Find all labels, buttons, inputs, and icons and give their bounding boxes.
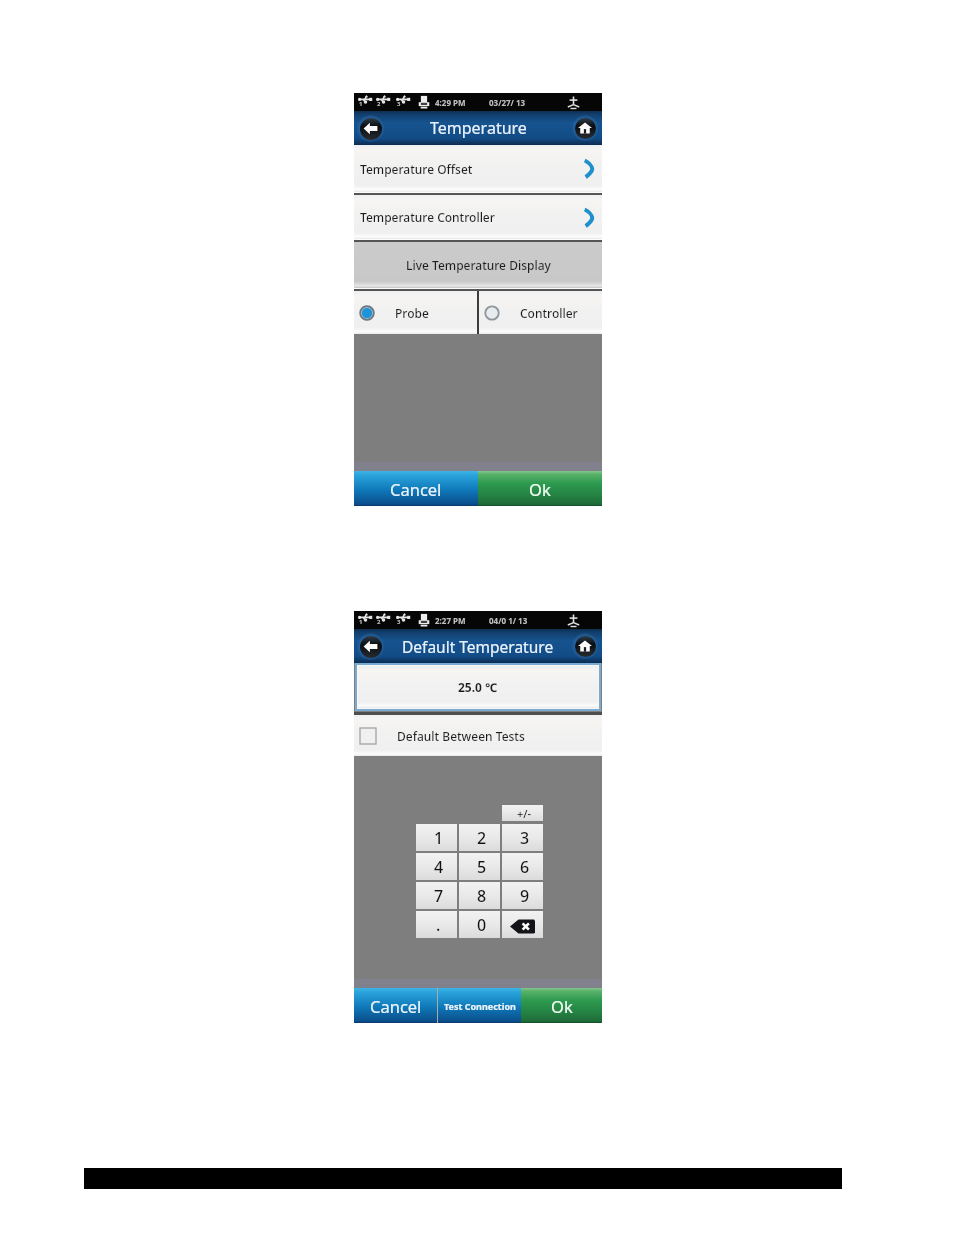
staticText: 2	[377, 100, 381, 108]
staticText: 3	[397, 618, 401, 626]
button[interactable]: Temperature Offset	[354, 145, 602, 192]
staticText: 04/0 1/ 13	[489, 615, 528, 626]
staticText: +/-	[517, 806, 532, 821]
staticText: 4:29 PM	[435, 97, 466, 108]
staticText: 0	[477, 914, 487, 936]
staticText: 2:27 PM	[435, 615, 466, 626]
button[interactable]: 7	[416, 882, 457, 909]
staticText: Ok	[551, 995, 573, 1017]
button[interactable]: Cancel	[354, 471, 478, 506]
button[interactable]: Back	[357, 633, 384, 660]
staticText: .	[436, 914, 441, 936]
staticText: Temperature Controller	[360, 209, 495, 225]
staticText: 3	[397, 100, 401, 108]
button[interactable]: Ok	[478, 471, 602, 506]
button[interactable]: Back	[357, 115, 384, 142]
staticText: 3	[520, 827, 530, 849]
button[interactable]: Backspace	[502, 911, 543, 938]
staticText: 6	[520, 856, 530, 878]
staticText: Cancel	[370, 995, 422, 1017]
button[interactable]: 8	[459, 882, 500, 909]
button[interactable]: 9	[502, 882, 543, 909]
staticText: 1	[359, 618, 363, 626]
button[interactable]: Home	[572, 115, 598, 141]
button[interactable]: 0	[459, 911, 500, 938]
staticText: 8	[477, 885, 487, 907]
staticText: 25.0 ℃	[458, 679, 498, 695]
staticText: Cancel	[390, 478, 442, 500]
button[interactable]: Home	[572, 633, 598, 659]
staticText: Probe	[395, 305, 429, 321]
staticText: 2	[477, 827, 487, 849]
button[interactable]: 25.0 ℃	[358, 666, 598, 708]
staticText: 7	[434, 885, 444, 907]
staticText: 1	[359, 100, 363, 108]
staticText: 1	[434, 827, 444, 849]
button[interactable]: Cancel	[354, 988, 437, 1023]
button[interactable]: 3	[502, 824, 543, 851]
button[interactable]: Default Between Tests	[354, 715, 602, 756]
staticText: 2	[377, 618, 381, 626]
button[interactable]: Test Connection	[438, 988, 521, 1023]
button[interactable]: Ok	[521, 988, 602, 1023]
button[interactable]: Temperature Controller	[354, 195, 602, 239]
button[interactable]: .	[416, 911, 457, 938]
staticText: 5	[477, 856, 487, 878]
button[interactable]: Controller	[479, 291, 602, 334]
staticText: Default Temperature	[402, 636, 554, 657]
staticText: Default Between Tests	[397, 728, 525, 744]
button[interactable]: Probe	[354, 291, 477, 334]
staticText: Temperature Offset	[360, 161, 473, 177]
staticText: Ok	[529, 478, 551, 500]
button[interactable]: 6	[502, 853, 543, 880]
staticText: 03/27/ 13	[489, 97, 526, 108]
button[interactable]: 1	[416, 824, 457, 851]
staticText: 4	[434, 856, 444, 878]
staticText: Controller	[520, 305, 578, 321]
button[interactable]: +/-	[502, 805, 543, 821]
button[interactable]: 4	[416, 853, 457, 880]
staticText: Temperature	[430, 117, 527, 139]
staticText: Live Temperature Display	[406, 257, 551, 273]
button[interactable]: 5	[459, 853, 500, 880]
staticText: Test Connection	[444, 1000, 516, 1012]
button[interactable]: 2	[459, 824, 500, 851]
staticText: 9	[520, 885, 530, 907]
